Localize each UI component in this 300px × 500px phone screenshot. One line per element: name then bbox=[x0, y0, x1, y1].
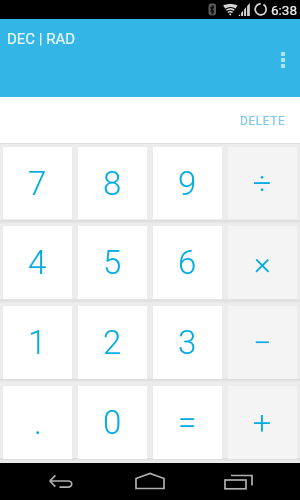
button[interactable]: 1 bbox=[3, 306, 72, 379]
button[interactable]: 3 bbox=[153, 306, 222, 379]
button[interactable]: DELETE bbox=[232, 103, 294, 139]
staticText: 0 bbox=[103, 403, 122, 442]
staticText: − bbox=[253, 324, 272, 362]
staticText: 9 bbox=[178, 164, 197, 203]
staticText: 2 bbox=[103, 323, 122, 362]
button[interactable]: 2 bbox=[78, 306, 147, 379]
button[interactable]: 5 bbox=[78, 226, 147, 299]
button[interactable]: More options bbox=[271, 46, 295, 74]
button[interactable]: 7 bbox=[3, 147, 72, 219]
button[interactable]: + bbox=[228, 386, 297, 459]
button[interactable]: Home bbox=[100, 463, 200, 500]
staticText: 7 bbox=[28, 164, 47, 203]
button[interactable]: 8 bbox=[78, 147, 147, 219]
staticText: . bbox=[34, 403, 42, 442]
button[interactable]: ÷ bbox=[228, 147, 297, 219]
staticText: 3 bbox=[178, 323, 197, 362]
button[interactable]: . bbox=[3, 386, 72, 459]
staticText: = bbox=[178, 403, 197, 442]
button[interactable]: 9 bbox=[153, 147, 222, 219]
staticText: 5 bbox=[103, 243, 122, 282]
staticText: + bbox=[253, 404, 272, 442]
button[interactable]: 0 bbox=[78, 386, 147, 459]
staticText: 8 bbox=[103, 164, 122, 203]
staticText: 6:38 bbox=[271, 2, 298, 18]
button[interactable]: Recent apps bbox=[200, 463, 300, 500]
button[interactable]: 6 bbox=[153, 226, 222, 299]
button[interactable]: Back bbox=[0, 463, 100, 500]
staticText: 4 bbox=[28, 243, 47, 282]
staticText: 1 bbox=[28, 323, 47, 362]
staticText: DELETE bbox=[240, 114, 286, 128]
button[interactable]: × bbox=[228, 226, 297, 299]
button[interactable]: − bbox=[228, 306, 297, 379]
button[interactable]: DEC | RAD bbox=[7, 30, 76, 48]
button[interactable]: 4 bbox=[3, 226, 72, 299]
button[interactable]: = bbox=[153, 386, 222, 459]
staticText: × bbox=[254, 244, 271, 282]
staticText: ÷ bbox=[253, 164, 272, 202]
staticText: 6 bbox=[178, 243, 197, 282]
